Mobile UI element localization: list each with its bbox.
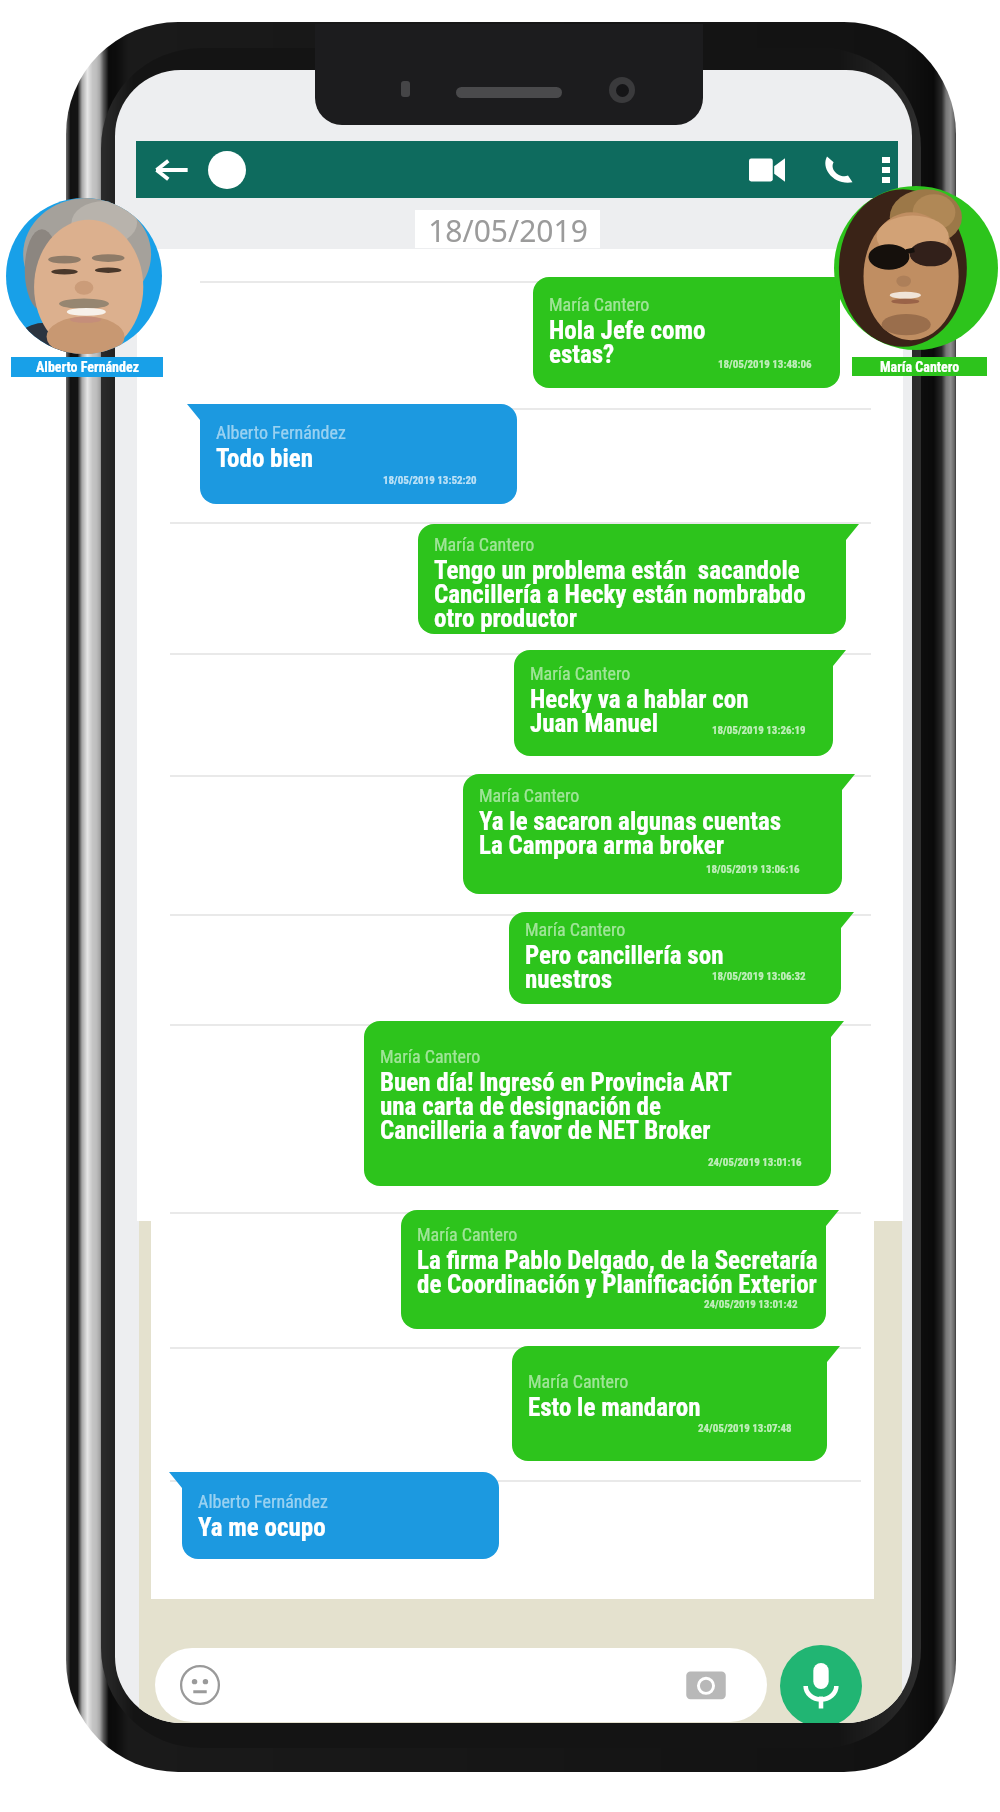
staticText: Alberto Fernández [216,422,346,443]
button[interactable]: María Cantero [463,774,842,894]
staticText: Hola Jefe como [549,316,706,345]
staticText: María Cantero [434,534,535,555]
staticText: Ya me ocupo [198,1513,326,1542]
button[interactable]: María Cantero [418,524,846,634]
staticText: nuestros [525,965,613,994]
staticText: María Cantero [549,294,650,315]
staticText: Alberto Fernández [198,1491,328,1512]
button[interactable]: Emoji [155,1648,767,1722]
button[interactable]: María Cantero [512,1346,827,1461]
button[interactable]: María Cantero [834,186,998,350]
button[interactable]: María Cantero [509,912,841,1004]
staticText: 24/05/2019 13:07:48 [698,1422,792,1435]
button[interactable]: Alberto Fernández [11,357,163,377]
button[interactable]: Voice message [780,1645,862,1723]
button[interactable]: Alberto Fernández [200,404,517,504]
button[interactable]: Alberto Fernández [6,198,162,354]
staticText: 18/05/2019 13:52:20 [383,474,477,487]
staticText: María Cantero [880,359,960,375]
staticText: Buen día! Ingresó en Provincia ART [380,1068,732,1097]
staticText: 24/05/2019 13:01:16 [708,1156,802,1169]
staticText: Pero cancillería son [525,941,724,970]
staticText: 24/05/2019 13:01:42 [704,1298,798,1311]
staticText: María Cantero [530,663,631,684]
staticText: La Campora arma broker [479,831,725,860]
button[interactable]: María Cantero [364,1021,831,1186]
staticText: Cancilleria a favor de NET Broker [380,1116,711,1145]
staticText: estas? [549,340,615,369]
button[interactable]: Alberto Fernández [182,1472,499,1559]
button[interactable]: 18/05/2019 [415,210,600,248]
staticText: María Cantero [417,1224,518,1245]
button[interactable]: Contact photo [208,151,246,189]
staticText: Alberto Fernández [36,359,139,375]
staticText: María Cantero [528,1371,629,1392]
staticText: Esto le mandaron [528,1393,701,1422]
button[interactable]: Video call [736,141,798,198]
staticText: María Cantero [525,919,626,940]
staticText: una carta de designación de [380,1092,661,1121]
staticText: 18/05/2019 13:26:19 [712,724,806,737]
staticText: de Coordinación y Planificación Exterior [417,1270,817,1299]
button[interactable]: María Cantero [401,1210,826,1329]
staticText: Cancillería a Hecky están nombrabdo [434,580,806,609]
button[interactable]: Call [810,141,868,198]
staticText: 18/05/2019 13:06:16 [706,863,800,876]
button[interactable]: Back [142,141,200,198]
staticText: María Cantero [380,1046,481,1067]
button[interactable]: María Cantero [852,357,987,376]
button[interactable]: More options [864,141,908,198]
button[interactable]: Camera [685,1664,727,1706]
staticText: Ya le sacaron algunas cuentas [479,807,782,836]
staticText: La firma Pablo Delgado, de la Secretaría [417,1246,818,1275]
staticText: Juan Manuel [530,709,658,738]
button[interactable]: María Cantero [533,277,840,388]
other: Emoji [179,1664,221,1706]
staticText: Todo bien [216,444,314,473]
staticText: 18/05/2019 13:48:06 [718,358,812,371]
staticText: María Cantero [479,785,580,806]
staticText: 18/05/2019 13:06:32 [712,970,806,983]
button[interactable]: María Cantero [514,650,833,756]
staticText: Hecky va a hablar con [530,685,749,714]
staticText: Tengo un problema están sacandole [434,556,800,585]
staticText: 18/05/2019 [428,210,588,248]
staticText: otro productor [434,604,578,633]
